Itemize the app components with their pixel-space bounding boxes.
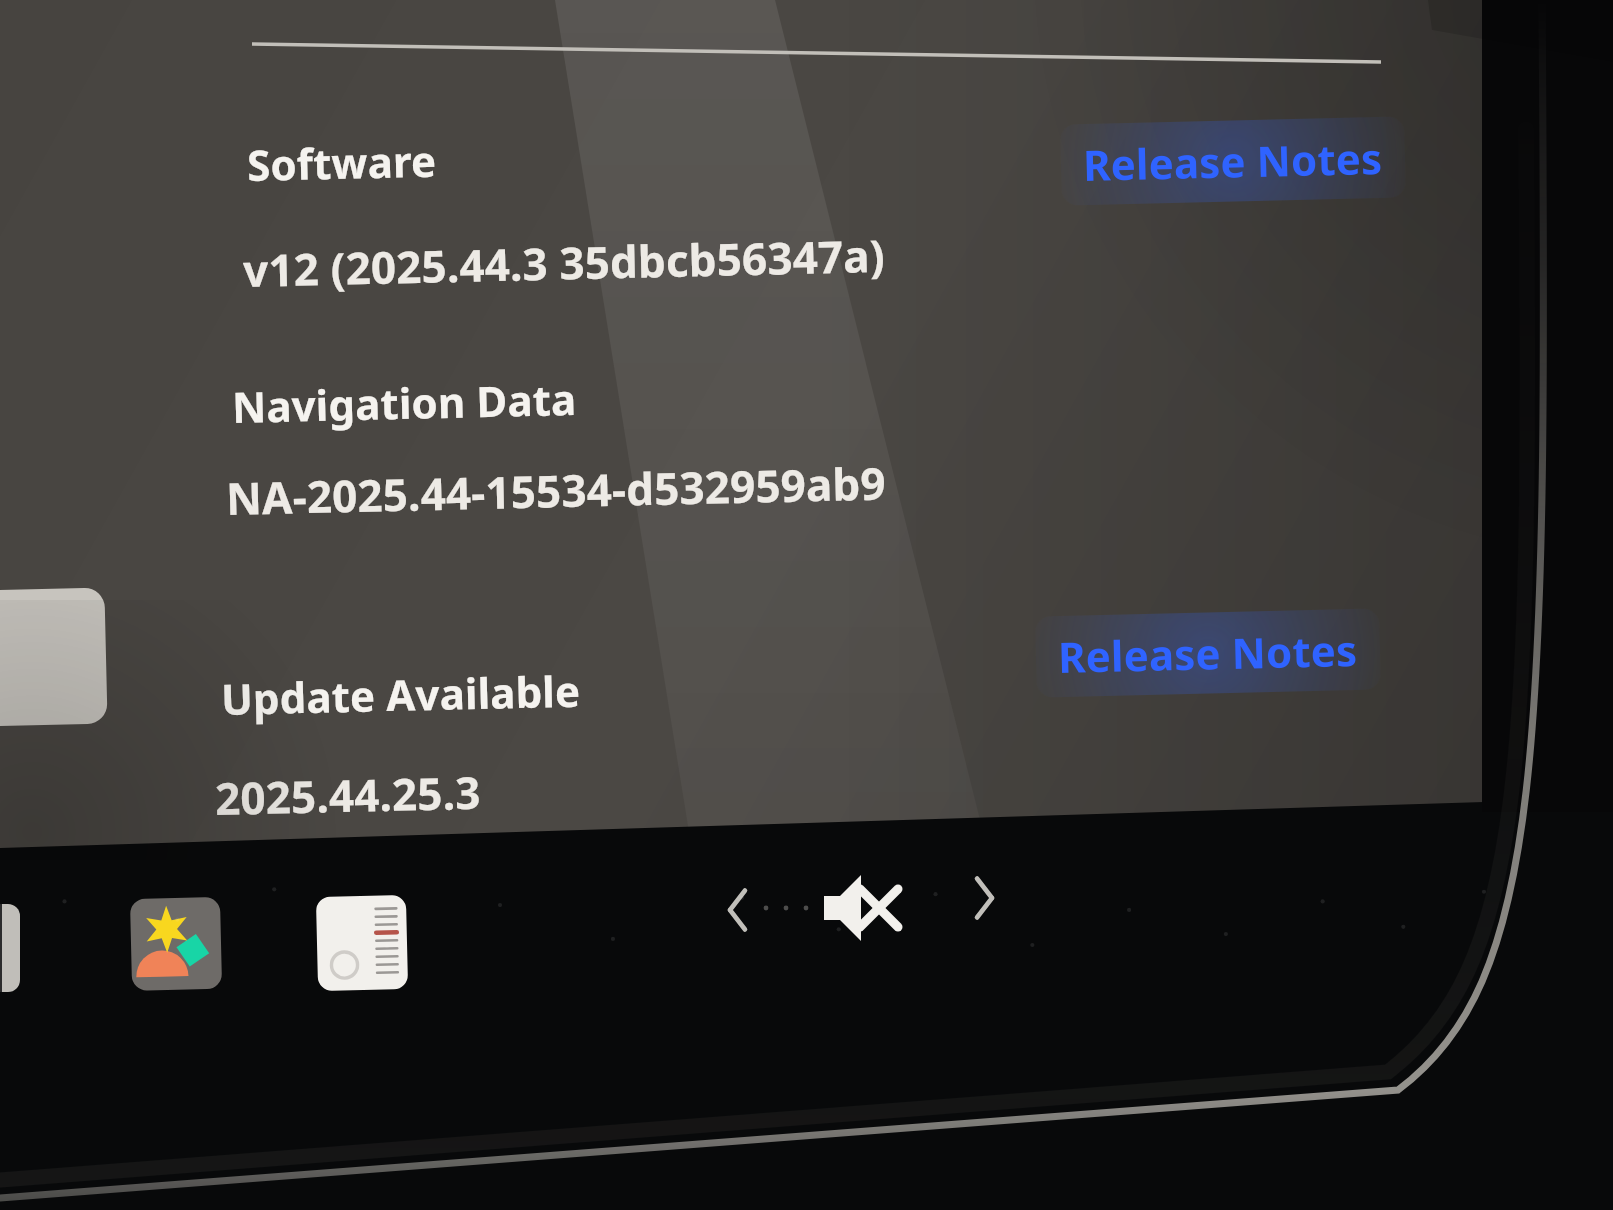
button[interactable]: Release Notes for update 2025.44.25.3 — [1100, 620, 1366, 686]
button[interactable]: Media — [124, 890, 230, 998]
button[interactable]: Navigation Data NA-2025.44-15534-d532959… — [196, 358, 1076, 540]
button[interactable]: Next — [958, 852, 1032, 942]
button[interactable]: Climate — [308, 888, 416, 996]
button[interactable]: Release Notes for software version v12 — [1126, 126, 1392, 192]
button[interactable]: Install update — [0, 586, 110, 728]
button[interactable]: Volume muted — [802, 852, 918, 948]
button[interactable]: Software v12 (2025.44.3 35dbcb56347a) — [200, 118, 1080, 314]
button[interactable]: Update Available 2025.44.25.3 — [180, 648, 1060, 830]
button[interactable]: Previous — [698, 858, 772, 948]
